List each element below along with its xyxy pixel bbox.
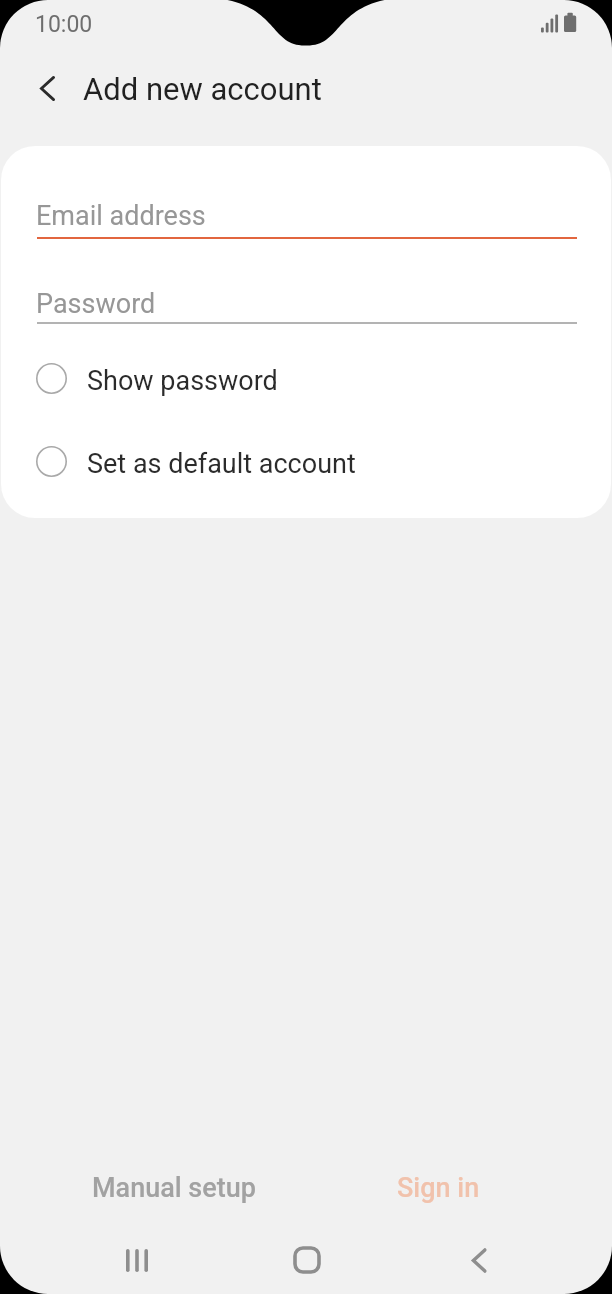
button[interactable]: Show password [1,348,611,408]
staticText: Manual setup [92,1172,256,1204]
staticText: Email address [36,200,206,232]
button[interactable]: Back [433,1226,524,1294]
button[interactable]: Manual setup [42,1152,306,1224]
staticText: Show password [87,365,278,397]
button[interactable]: Set as default account [1,431,611,491]
staticText: Add new account [83,71,322,107]
button[interactable]: Recent apps [91,1226,182,1294]
staticText: Set as default account [87,448,356,480]
staticText: Sign in [397,1172,480,1204]
button[interactable]: Sign in [306,1152,570,1224]
staticText: Password [36,288,156,320]
button[interactable]: Navigate up [21,62,73,114]
button[interactable]: Home [261,1226,352,1294]
staticText: 10:00 [35,11,93,38]
